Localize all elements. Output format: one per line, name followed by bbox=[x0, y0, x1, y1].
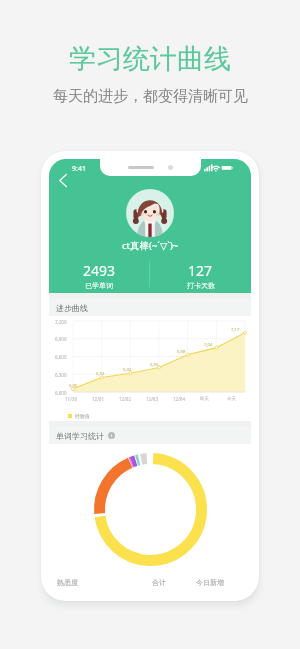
staticText: 6,42 bbox=[123, 367, 132, 373]
staticText: 单词学习统计 bbox=[56, 431, 104, 441]
staticText: 6,300 bbox=[55, 372, 67, 378]
staticText: 昨天 bbox=[200, 396, 209, 402]
staticText: 进步曲线 bbox=[56, 303, 88, 313]
button[interactable]: 2493 bbox=[49, 261, 149, 290]
staticText: 6,05 bbox=[69, 383, 78, 389]
staticText: ct真棒(~ˊ▽ˋ)~ bbox=[122, 239, 179, 252]
staticText: 2493 bbox=[83, 261, 116, 280]
staticText: 9:41 bbox=[72, 164, 86, 174]
button[interactable]: 熟悉度 bbox=[57, 578, 78, 587]
staticText: 今天 bbox=[227, 396, 236, 402]
staticText: 已学单词 bbox=[85, 281, 113, 290]
staticText: 经验值 bbox=[75, 413, 90, 419]
staticText: 学习统计曲线 bbox=[69, 42, 231, 76]
staticText: 打卡天数 bbox=[187, 281, 215, 290]
staticText: 7,200 bbox=[55, 319, 67, 325]
button[interactable]: 127 bbox=[150, 261, 251, 290]
staticText: 11/30 bbox=[65, 396, 77, 402]
staticText: 12/03 bbox=[146, 396, 158, 402]
staticText: 127 bbox=[188, 261, 213, 280]
staticText: 7,04 bbox=[204, 342, 213, 348]
staticText: 6,88 bbox=[177, 349, 186, 355]
staticText: 7,17 bbox=[231, 327, 240, 333]
staticText: 12/02 bbox=[119, 396, 131, 402]
staticText: 12/01 bbox=[92, 396, 104, 402]
staticText: 每天的进步，都变得清晰可见 bbox=[53, 87, 248, 106]
staticText: 6,600 bbox=[55, 354, 67, 360]
button[interactable]: 今日新增 bbox=[196, 578, 224, 587]
staticText: 12/04 bbox=[173, 396, 185, 402]
staticText: 6,55 bbox=[150, 362, 159, 368]
staticText: 6,900 bbox=[55, 336, 67, 342]
staticText: 6,33 bbox=[96, 371, 105, 377]
button[interactable]: Back bbox=[51, 168, 75, 192]
button[interactable]: 合计 bbox=[152, 578, 166, 587]
staticText: 6,000 bbox=[55, 390, 67, 396]
